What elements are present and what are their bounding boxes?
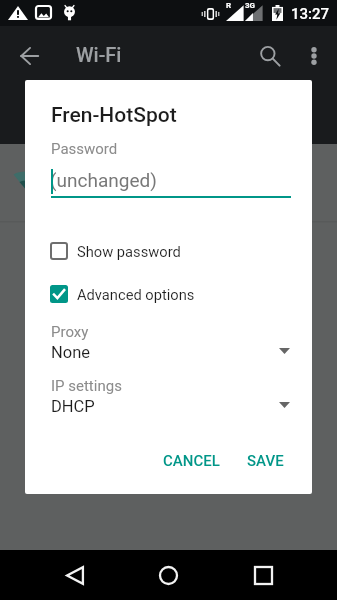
staticText: None: [51, 343, 91, 362]
button[interactable]: Back: [51, 550, 99, 600]
button[interactable]: Proxy: [25, 315, 312, 363]
button[interactable]: SAVE: [238, 443, 292, 479]
button[interactable]: Home: [144, 550, 192, 600]
staticText: DHCP: [51, 397, 95, 416]
staticText: Advanced options: [77, 286, 195, 303]
button[interactable]: Search: [246, 32, 294, 80]
staticText: 3G: [245, 1, 256, 10]
button[interactable]: Advanced options: [50, 281, 287, 307]
staticText: (unchanged): [50, 169, 157, 191]
staticText: IP settings: [51, 377, 122, 395]
staticText: Show password: [77, 243, 181, 260]
staticText: Password: [51, 140, 118, 158]
staticText: R: [226, 1, 232, 10]
button[interactable]: CANCEL: [151, 443, 231, 479]
staticText: Fren-HotSpot: [51, 103, 177, 128]
staticText: Wi-Fi: [76, 43, 122, 66]
button[interactable]: Show password: [50, 238, 287, 264]
button[interactable]: IP settings: [25, 369, 312, 417]
staticText: 13:27: [291, 5, 330, 23]
staticText: Proxy: [51, 323, 89, 341]
staticText: CANCEL: [163, 452, 220, 470]
button[interactable]: More options: [294, 36, 334, 76]
button[interactable]: Recent apps: [239, 550, 287, 600]
staticText: SAVE: [247, 452, 284, 470]
button[interactable]: Navigate up: [5, 32, 53, 80]
